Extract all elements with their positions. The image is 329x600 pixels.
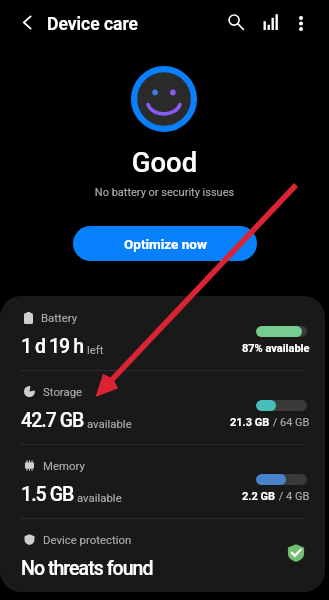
staticText: No threats found: [21, 557, 153, 580]
staticText: available: [77, 491, 122, 504]
staticText: Good: [0, 146, 329, 178]
staticText: 42.7 GB: [21, 409, 84, 432]
button[interactable]: Storage: [0, 370, 325, 444]
staticText: Storage: [43, 385, 83, 398]
staticText: available: [87, 417, 132, 430]
staticText: No battery or security issues: [0, 186, 329, 199]
staticText: left: [87, 343, 104, 356]
button[interactable]: Back: [9, 4, 45, 40]
staticText: / 4 GB: [276, 490, 310, 503]
button[interactable]: Usage statistics: [252, 4, 288, 40]
staticText: 1.5 GB: [21, 483, 74, 506]
button[interactable]: Battery: [0, 296, 325, 370]
button[interactable]: Search: [218, 4, 254, 40]
staticText: Battery: [41, 311, 78, 324]
button[interactable]: More options: [283, 5, 319, 41]
staticText: Device care: [47, 14, 138, 35]
staticText: 21.3 GB: [230, 416, 270, 429]
staticText: 2.2 GB: [242, 490, 276, 503]
staticText: Device protection: [43, 533, 132, 546]
button[interactable]: Memory: [0, 444, 325, 518]
staticText: 87% available: [242, 342, 310, 355]
staticText: / 64 GB: [270, 416, 310, 429]
staticText: 1 d 19 h: [21, 335, 84, 358]
staticText: Optimize now: [124, 236, 207, 252]
button[interactable]: Device protection: [0, 518, 325, 592]
staticText: Memory: [43, 459, 85, 472]
button[interactable]: Optimize now: [73, 226, 257, 261]
